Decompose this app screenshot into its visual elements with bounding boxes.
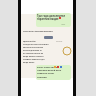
staticText: Паролям вырей бизн [37, 69, 62, 72]
staticText: непосредственно за [23, 49, 42, 51]
staticText: когда Бизне [23, 61, 35, 63]
staticText: когда Бизнес помогае [23, 55, 44, 57]
other: Logo [62, 46, 72, 56]
button[interactable]: Запас заместителя [36, 65, 71, 80]
staticText: Запас заместителя [37, 66, 59, 69]
staticText: Способы бронирования [23, 29, 53, 32]
button[interactable]: Три года дополнител [36, 13, 71, 27]
staticText: 14:32 [61, 23, 66, 25]
staticText: появится знает [37, 72, 55, 75]
staticText: Здравствуйте [23, 40, 36, 42]
staticText: по заказам Способ ра [23, 52, 44, 54]
staticText: Сегодня начали обслужива [23, 43, 49, 45]
button[interactable] [44, 36, 53, 39]
staticText: понрави [37, 76, 47, 79]
staticText: Сможете изменить дан [23, 58, 45, 60]
staticText: объектов Ростелеком [23, 46, 44, 48]
staticText: отзыв [56, 40, 63, 43]
staticText: Три года дополнител [37, 14, 66, 18]
staticText: гарантии выдае [37, 17, 59, 21]
